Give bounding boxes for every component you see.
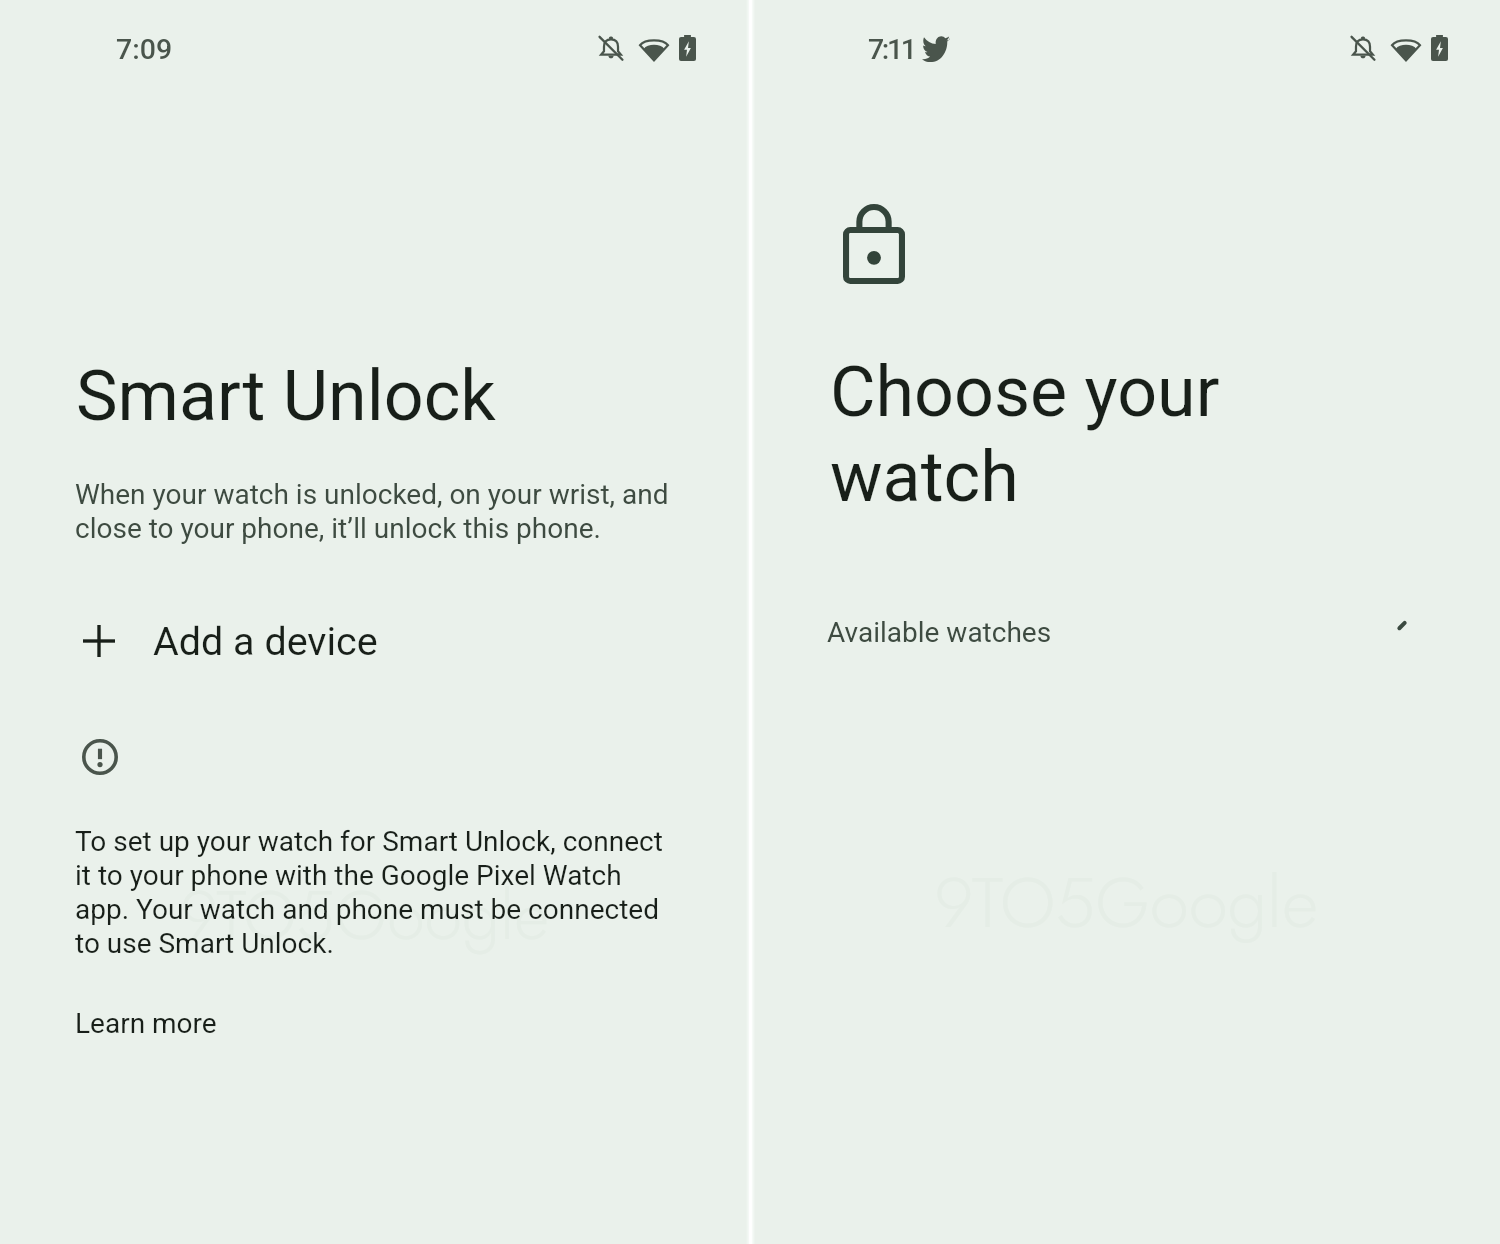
other: Wi-Fi (1391, 37, 1421, 61)
other: Battery charging (679, 35, 696, 61)
staticText: When your watch is unlocked, on your wri… (75, 478, 669, 545)
other: Information (82, 739, 118, 775)
other: Notifications silenced (1350, 35, 1376, 61)
button[interactable]: Learn more (76, 1001, 218, 1045)
staticText: 7:11 (868, 33, 915, 66)
other: Notifications silenced (598, 35, 624, 61)
button[interactable]: Add a device (0, 609, 749, 673)
staticText: Available watches (827, 616, 1052, 649)
staticText: Learn more (75, 1007, 217, 1040)
other: Wi-Fi (639, 37, 669, 61)
staticText: Choose your watch (830, 351, 1220, 518)
staticText: Smart Unlock (76, 355, 496, 437)
other: Battery charging (1431, 35, 1448, 61)
other: Lock (843, 201, 905, 284)
staticText: 7:09 (116, 33, 173, 66)
staticText: 9TO5Google (180, 866, 549, 964)
other: Twitter (920, 36, 950, 65)
staticText: To set up your watch for Smart Unlock, c… (75, 825, 663, 960)
staticText: Add a device (153, 618, 378, 664)
